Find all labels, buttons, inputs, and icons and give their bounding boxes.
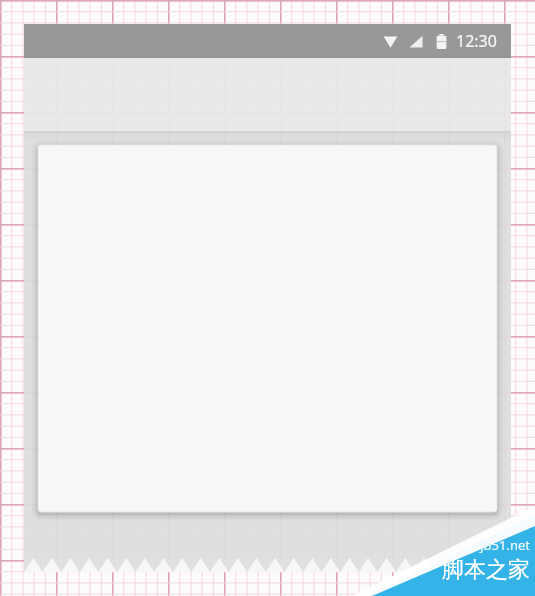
other: Wi-Fi [383, 35, 398, 48]
staticText: jb51.net [480, 536, 530, 554]
other: Battery [436, 34, 447, 49]
staticText: 脚本之家 [442, 556, 530, 584]
staticText: 12:30 [456, 30, 497, 52]
other: Mobile signal [409, 35, 423, 48]
